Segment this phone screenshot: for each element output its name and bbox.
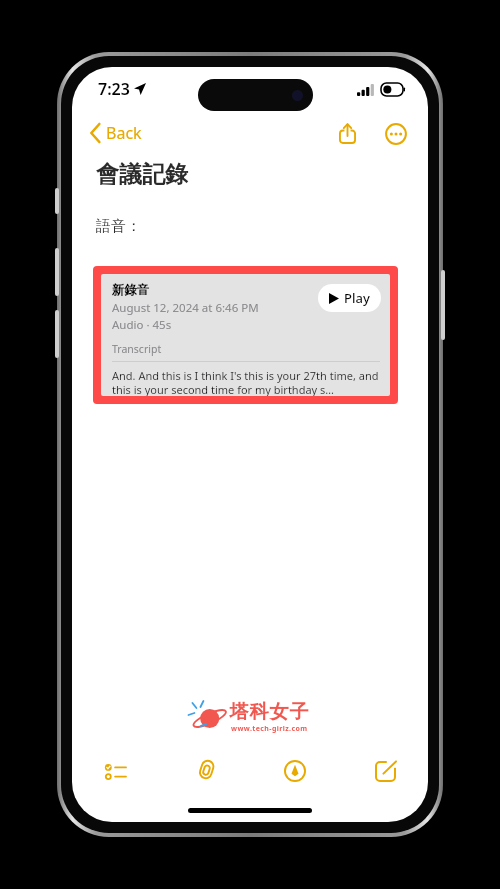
staticText: Play — [344, 289, 370, 307]
staticText: 新錄音 — [112, 282, 150, 298]
button[interactable]: More options — [382, 120, 410, 148]
button[interactable]: Markup — [279, 755, 311, 787]
staticText: 塔科女子 — [229, 700, 309, 724]
staticText: 會議記錄 — [96, 160, 188, 189]
staticText: Back — [106, 122, 142, 144]
staticText: 7:23 — [98, 78, 130, 100]
button[interactable]: Share — [335, 119, 360, 148]
button[interactable]: Play — [318, 284, 381, 312]
button[interactable]: New note — [369, 755, 402, 788]
button[interactable]: Checklist — [98, 757, 132, 786]
staticText: Transcript — [112, 342, 162, 356]
staticText: 語音： — [96, 217, 141, 236]
staticText: www.tech-girlz.com — [231, 724, 308, 734]
button[interactable]: Back — [84, 118, 148, 148]
staticText: And. And this is I think I's this is you… — [112, 368, 380, 396]
button[interactable]: Attach — [190, 753, 222, 789]
staticText: Audio · 45s — [112, 317, 172, 333]
staticText: August 12, 2024 at 6:46 PM — [112, 300, 259, 316]
button[interactable]: 新錄音 — [101, 274, 390, 396]
